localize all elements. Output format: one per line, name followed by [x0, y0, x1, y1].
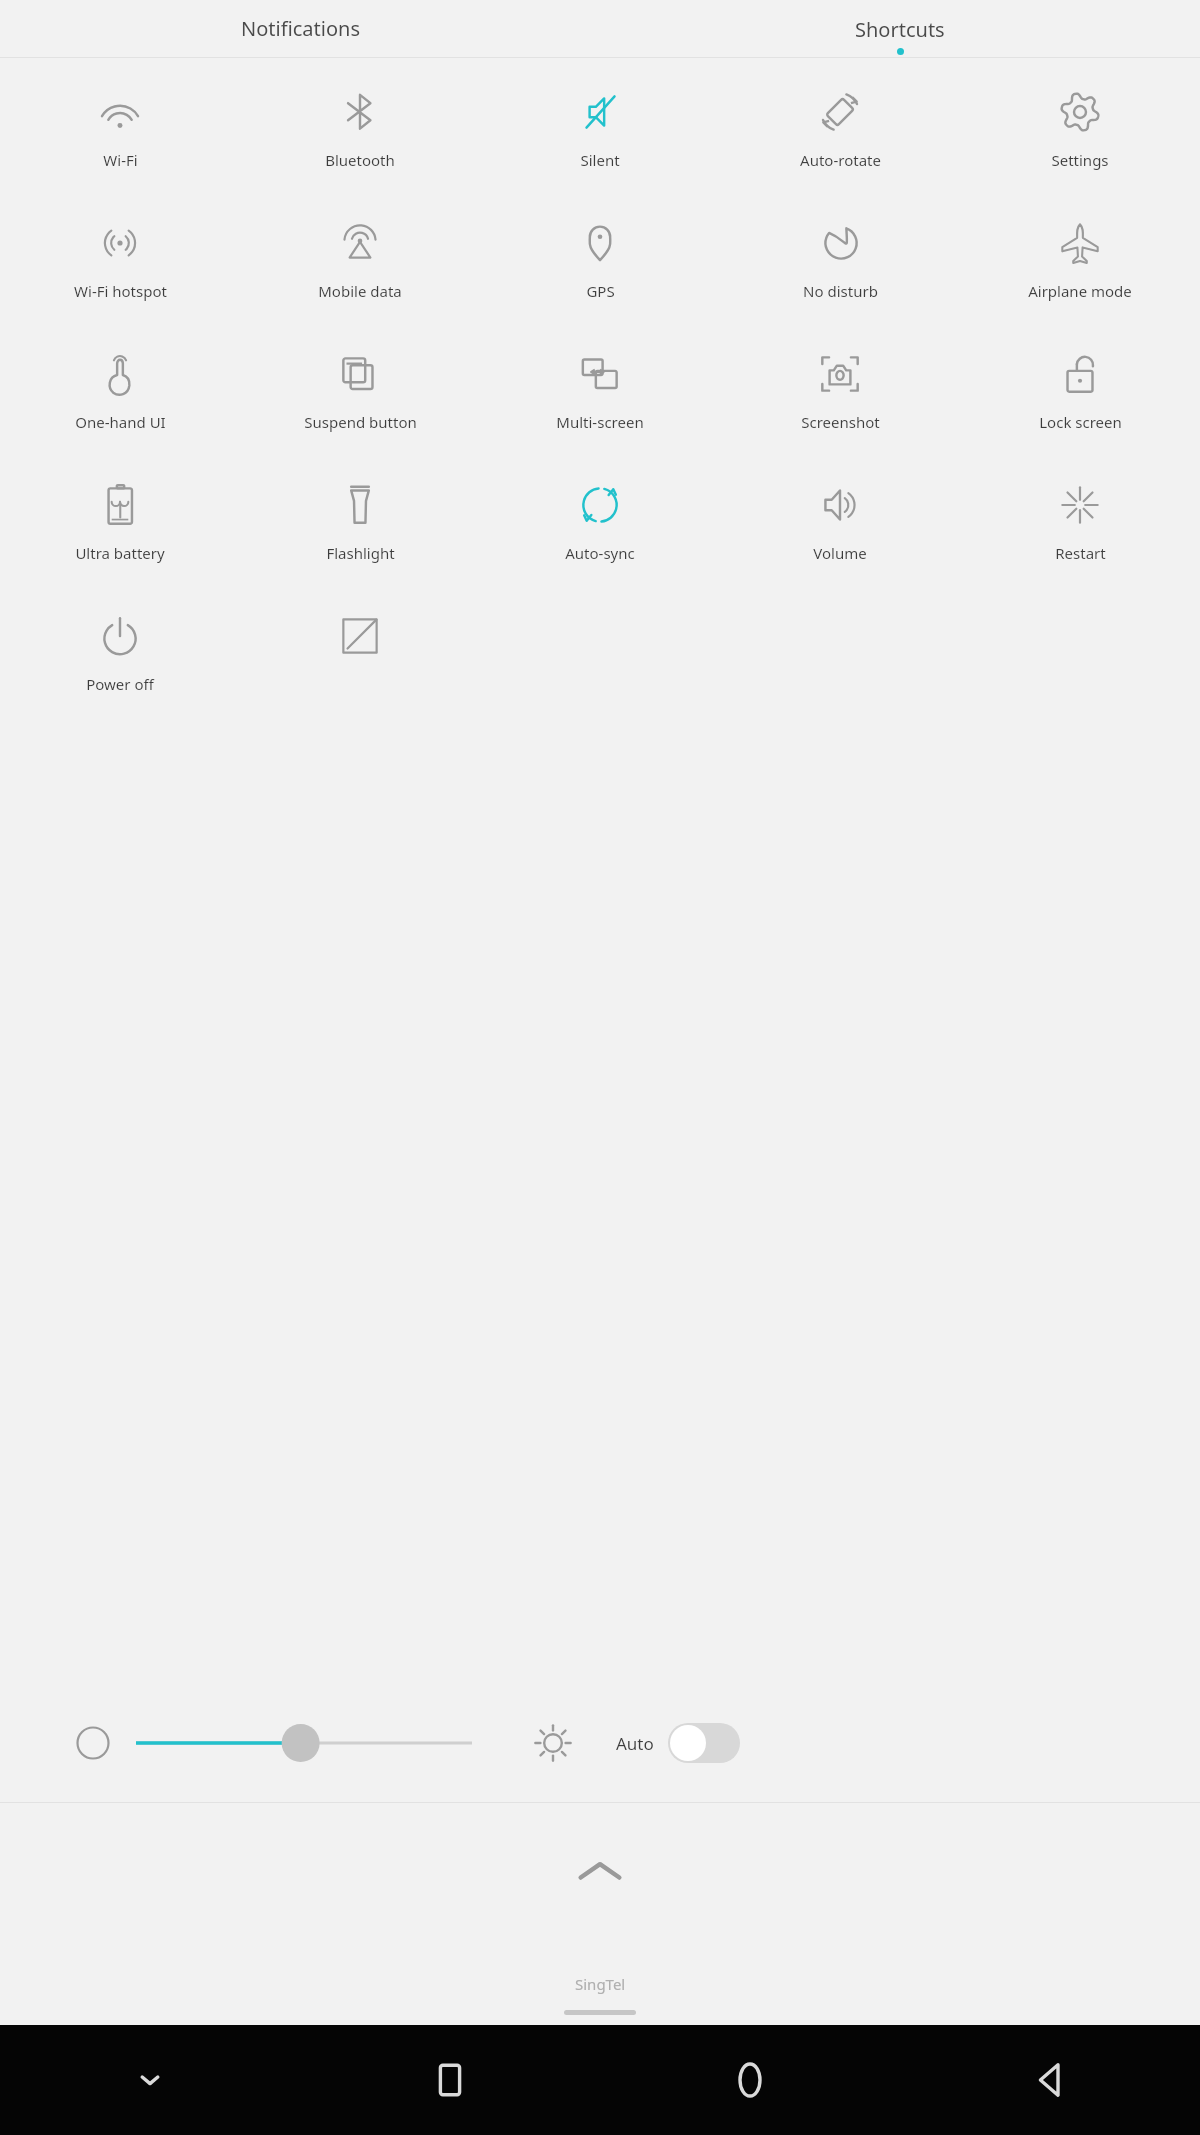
staticText: Power off — [86, 674, 154, 694]
staticText: GPS — [586, 281, 615, 301]
button[interactable]: Power off — [0, 592, 240, 723]
staticText: Screenshot — [801, 412, 880, 432]
button[interactable]: Auto — [616, 1723, 740, 1763]
button[interactable]: Edit shortcuts — [240, 592, 480, 723]
staticText: Ultra battery — [75, 543, 165, 563]
button[interactable]: Notifications — [0, 0, 600, 57]
button[interactable]: Airplane mode — [960, 199, 1200, 330]
button[interactable] — [136, 1719, 472, 1767]
button[interactable]: Auto-sync — [480, 461, 720, 592]
button[interactable]: Wi-Fi hotspot — [0, 199, 240, 330]
button[interactable]: Mobile data — [240, 199, 480, 330]
staticText: Multi-screen — [556, 412, 644, 432]
staticText: Auto-sync — [565, 543, 635, 563]
button[interactable]: Screenshot — [720, 330, 960, 461]
button[interactable]: Hide keyboard — [0, 2025, 300, 2135]
button[interactable]: Flashlight — [240, 461, 480, 592]
staticText: Volume — [813, 543, 867, 563]
button[interactable]: Multi-screen — [480, 330, 720, 461]
button[interactable]: Lock screen — [960, 330, 1200, 461]
staticText: Wi-Fi — [103, 150, 138, 170]
button[interactable]: Suspend button — [240, 330, 480, 461]
staticText: Suspend button — [304, 412, 417, 432]
button[interactable]: Silent — [480, 68, 720, 199]
button[interactable]: GPS — [480, 199, 720, 330]
staticText: SingTel — [575, 1974, 626, 1994]
staticText: Auto — [616, 1732, 654, 1755]
staticText: Settings — [1051, 150, 1109, 170]
button[interactable]: Auto-rotate — [720, 68, 960, 199]
button[interactable]: One-hand UI — [0, 330, 240, 461]
staticText: Flashlight — [326, 543, 395, 563]
staticText: Restart — [1055, 543, 1106, 563]
button[interactable]: No disturb — [720, 199, 960, 330]
button[interactable]: Restart — [960, 461, 1200, 592]
staticText: Bluetooth — [325, 150, 395, 170]
button[interactable]: Shortcuts — [600, 0, 1200, 57]
other: Low brightness — [76, 1726, 110, 1760]
staticText: Airplane mode — [1028, 281, 1132, 301]
staticText: Silent — [580, 150, 620, 170]
staticText: Wi-Fi hotspot — [74, 281, 167, 301]
button[interactable]: Back — [900, 2025, 1200, 2135]
button[interactable]: Bluetooth — [240, 68, 480, 199]
button[interactable]: Home — [600, 2025, 900, 2135]
staticText: Auto-rotate — [800, 150, 881, 170]
staticText: Mobile data — [318, 281, 402, 301]
staticText: One-hand UI — [75, 412, 166, 432]
staticText: Shortcuts — [855, 16, 945, 43]
button[interactable]: Wi-Fi — [0, 68, 240, 199]
staticText: Notifications — [241, 15, 360, 42]
button[interactable]: Ultra battery — [0, 461, 240, 592]
other: High brightness — [532, 1722, 574, 1764]
button[interactable]: Collapse panel — [555, 1827, 645, 1917]
button[interactable]: Recent apps — [300, 2025, 600, 2135]
staticText: No disturb — [803, 281, 878, 301]
staticText: Lock screen — [1039, 412, 1122, 432]
button[interactable]: Settings — [960, 68, 1200, 199]
button[interactable]: Volume — [720, 461, 960, 592]
